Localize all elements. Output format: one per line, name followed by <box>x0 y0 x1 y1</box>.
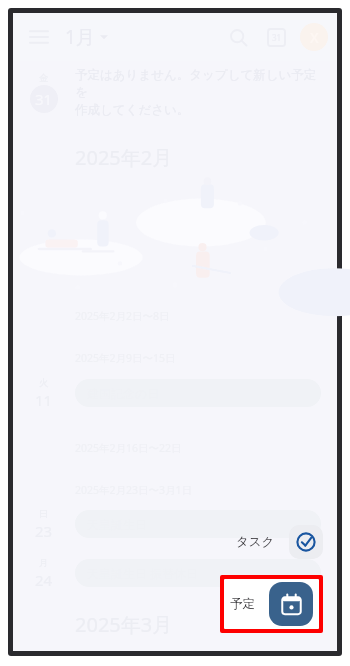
button[interactable]: 予定 <box>230 582 313 626</box>
staticText: 金 <box>39 72 49 84</box>
button[interactable]: 火 <box>13 369 337 417</box>
staticText: 2025年2月 <box>75 144 173 171</box>
staticText: 作成してください。 <box>75 102 190 118</box>
staticText: 1月 <box>65 24 95 50</box>
staticText: 24 <box>35 570 53 590</box>
button[interactable]: Account <box>295 18 333 56</box>
staticText: 31 <box>272 32 282 43</box>
button[interactable]: 月 <box>13 547 337 599</box>
staticText: タスク <box>236 534 275 550</box>
staticText: 23 <box>35 521 53 541</box>
staticText: 日 <box>39 508 49 520</box>
staticText: 月 <box>39 557 49 569</box>
button[interactable]: タスク <box>236 525 323 559</box>
other: New event <box>269 582 313 626</box>
staticText: 予定 <box>230 596 255 612</box>
staticText: 2025年3月 <box>75 611 173 638</box>
button[interactable]: 日 <box>13 501 337 547</box>
button[interactable]: 1月 <box>65 24 108 50</box>
